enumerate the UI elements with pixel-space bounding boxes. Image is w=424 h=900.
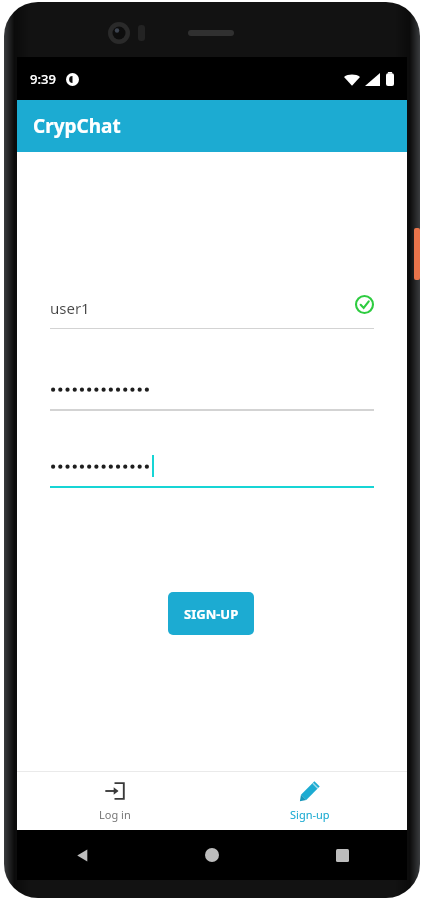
button[interactable] [50,371,374,407]
button[interactable]: Recents [277,830,407,880]
button[interactable]: Sign-up [212,772,407,830]
other: Log in [104,780,126,802]
button[interactable]: user1 [50,290,374,326]
staticText: Log in [99,807,131,822]
staticText: Sign-up [290,807,330,822]
button[interactable]: SIGN-UP [168,592,254,635]
button[interactable]: Log in [17,772,212,830]
button[interactable] [50,448,374,484]
other: Sign-up [299,780,321,802]
staticText: user1 [50,298,90,318]
button[interactable]: Home [147,830,277,880]
button[interactable]: Back [17,830,147,880]
staticText: SIGN-UP [184,605,239,623]
staticText: CrypChat [33,113,121,139]
staticText: 9:39 [30,70,56,88]
